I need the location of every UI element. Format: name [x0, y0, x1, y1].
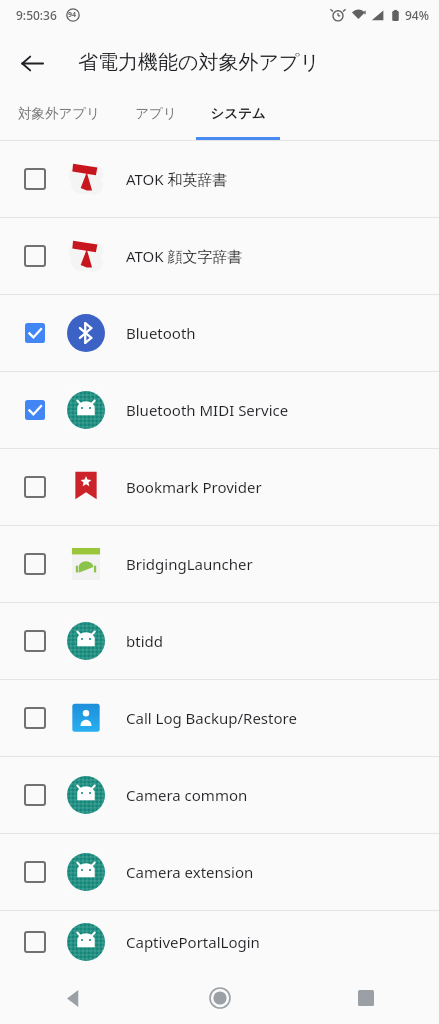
staticText: システム	[210, 105, 266, 122]
button[interactable]: Camera extension	[0, 834, 439, 910]
staticText: 9:50:36	[16, 7, 57, 23]
staticText: Bluetooth	[126, 323, 196, 343]
staticText: Bookmark Provider	[126, 477, 262, 497]
button[interactable]: アプリ	[118, 95, 194, 140]
staticText: CaptivePortalLogin	[126, 932, 260, 952]
button[interactable]: CaptivePortalLogin	[0, 911, 439, 972]
button[interactable]: Back	[45, 972, 101, 1024]
staticText: BridgingLauncher	[126, 554, 253, 574]
staticText: アプリ	[135, 105, 177, 122]
staticText: ATOK 顔文字辞書	[126, 246, 243, 266]
button[interactable]: Camera common	[0, 757, 439, 833]
staticText: Camera extension	[126, 862, 254, 882]
staticText: btidd	[126, 631, 163, 651]
button[interactable]: BridgingLauncher	[0, 526, 439, 602]
button[interactable]: btidd	[0, 603, 439, 679]
button[interactable]: 対象外アプリ	[0, 95, 118, 140]
staticText: 94	[68, 10, 77, 20]
staticText: Call Log Backup/Restore	[126, 708, 297, 728]
button[interactable]: Bookmark Provider	[0, 449, 439, 525]
button[interactable]: システム	[194, 95, 282, 140]
button[interactable]: Bluetooth	[0, 295, 439, 371]
staticText: 省電力機能の対象外アプリ	[78, 50, 320, 75]
staticText: Bluetooth MIDI Service	[126, 400, 289, 420]
button[interactable]: Back	[8, 39, 56, 87]
staticText: 対象外アプリ	[18, 105, 100, 122]
staticText: ATOK 和英辞書	[126, 169, 228, 189]
button[interactable]: ATOK 顔文字辞書	[0, 218, 439, 294]
button[interactable]: ATOK 和英辞書	[0, 141, 439, 217]
staticText: Camera common	[126, 785, 248, 805]
button[interactable]: Call Log Backup/Restore	[0, 680, 439, 756]
button[interactable]: Home	[192, 972, 248, 1024]
button[interactable]: Recents	[338, 972, 394, 1024]
staticText: 94%	[405, 7, 429, 23]
button[interactable]: Bluetooth MIDI Service	[0, 372, 439, 448]
